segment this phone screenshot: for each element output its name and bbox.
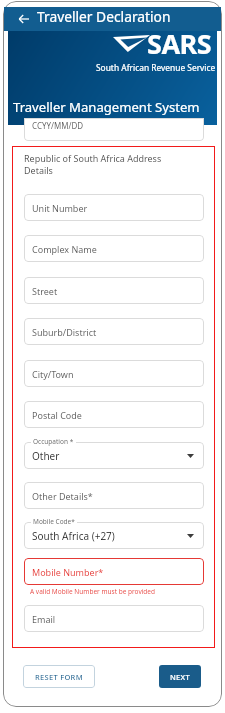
staticText: City/Town (32, 368, 74, 380)
staticText: RESET FORM (35, 672, 83, 682)
staticText: Unit Number (32, 202, 88, 214)
button[interactable]: Mobile Number* (24, 558, 204, 585)
button[interactable]: NEXT (159, 665, 201, 688)
staticText: South African Revenue Service (96, 62, 216, 73)
staticText: Mobile Number* (32, 566, 104, 578)
staticText: Traveller Declaration (37, 7, 171, 26)
button[interactable]: Suburb/District (24, 318, 204, 345)
button[interactable]: Postal Code (24, 401, 204, 428)
staticText: Republic of South Africa Address (24, 152, 162, 164)
button[interactable]: Email (24, 605, 204, 632)
button[interactable]: South Africa (+27) (24, 522, 204, 549)
staticText: A valid Mobile Number must be provided (30, 587, 156, 596)
staticText: Occupation * (33, 437, 74, 446)
button[interactable]: Back (12, 7, 36, 31)
staticText: Complex Name (32, 243, 97, 255)
staticText: NEXT (170, 672, 190, 682)
button[interactable]: City/Town (24, 360, 204, 387)
staticText: Other (32, 449, 60, 463)
staticText: CCYY/MM/DD (32, 120, 84, 131)
button[interactable]: Street (24, 277, 204, 304)
staticText: Email (32, 613, 56, 625)
staticText: Traveller Management System (13, 98, 200, 116)
staticText: Suburb/District (32, 326, 97, 338)
staticText: South Africa (+27) (32, 529, 115, 543)
staticText: Other Details* (32, 490, 93, 502)
staticText: Details (24, 164, 53, 176)
staticText: SARS (147, 25, 212, 62)
button[interactable]: RESET FORM (23, 665, 95, 688)
button[interactable]: Other Details* (24, 482, 204, 509)
staticText: Mobile Code* (33, 517, 75, 526)
staticText: Postal Code (32, 409, 82, 421)
button[interactable]: Unit Number (24, 194, 204, 221)
staticText: Street (32, 285, 58, 297)
button[interactable]: Complex Name (24, 235, 204, 262)
button[interactable]: Other (24, 442, 204, 469)
